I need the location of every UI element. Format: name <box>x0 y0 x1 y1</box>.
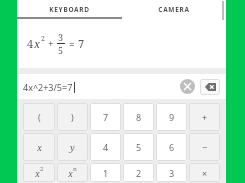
button[interactable]: 3 <box>156 163 187 182</box>
button[interactable]: x <box>57 163 88 182</box>
staticText: ) <box>71 111 74 123</box>
button[interactable]: × <box>189 163 220 182</box>
staticText: + <box>48 37 54 51</box>
button[interactable]: 1 <box>90 163 121 182</box>
staticText: x <box>68 167 73 179</box>
button[interactable]: x <box>23 133 55 161</box>
staticText: = <box>69 37 75 51</box>
button[interactable]: 4 <box>17 19 226 68</box>
staticText: 5 <box>58 44 64 56</box>
staticText: 5 <box>136 141 142 153</box>
staticText: y <box>70 141 75 153</box>
button[interactable]: 5 <box>123 133 154 161</box>
button[interactable]: 2 <box>123 163 154 182</box>
button[interactable]: 4 <box>90 133 121 161</box>
staticText: × <box>202 167 208 179</box>
button[interactable]: KEYBOARD <box>17 0 121 19</box>
staticText: x <box>35 167 40 179</box>
button[interactable]: 4x^2+3/5=7 <box>23 81 180 93</box>
staticText: x <box>34 36 41 51</box>
button[interactable]: 6 <box>156 133 187 161</box>
button[interactable]: − <box>189 133 220 161</box>
button[interactable]: + <box>189 103 220 131</box>
staticText: + <box>202 111 208 123</box>
staticText: 2 <box>40 165 44 173</box>
staticText: 2 <box>136 167 142 179</box>
staticText: 4 <box>27 36 34 51</box>
staticText: 6 <box>169 141 175 153</box>
button[interactable]: y <box>57 133 88 161</box>
staticText: 3 <box>169 167 175 179</box>
staticText: CAMERA <box>158 5 190 14</box>
staticText: n <box>73 165 77 173</box>
staticText: 4x^2+3/5=7 <box>23 81 73 93</box>
button[interactable]: Backspace <box>200 79 220 95</box>
staticText: KEYBOARD <box>49 5 90 14</box>
staticText: 8 <box>136 111 142 123</box>
staticText: ( <box>38 111 41 123</box>
staticText: 4 <box>103 141 109 153</box>
button[interactable]: 7 <box>90 103 121 131</box>
button[interactable]: 9 <box>156 103 187 131</box>
button[interactable]: Clear <box>180 79 195 94</box>
staticText: 3 <box>58 31 64 43</box>
button[interactable]: x <box>23 163 55 182</box>
button[interactable]: 8 <box>123 103 154 131</box>
staticText: 7 <box>103 111 109 123</box>
button[interactable]: ( <box>23 103 55 131</box>
staticText: 1 <box>103 167 109 179</box>
staticText: 7 <box>78 36 85 51</box>
button[interactable]: ) <box>57 103 88 131</box>
staticText: x <box>37 141 42 153</box>
staticText: 9 <box>169 111 175 123</box>
button[interactable]: CAMERA <box>121 0 226 19</box>
staticText: 2 <box>41 34 45 44</box>
staticText: − <box>202 141 208 153</box>
